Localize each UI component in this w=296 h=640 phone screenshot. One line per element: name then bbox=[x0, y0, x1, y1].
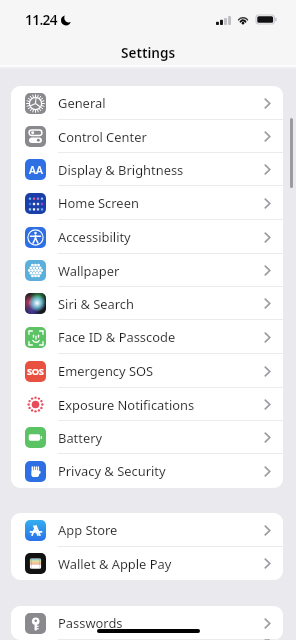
button[interactable]: Home Screen bbox=[11, 186, 283, 220]
button[interactable]: Face ID & Passcode bbox=[11, 320, 283, 354]
staticText: Accessibility bbox=[58, 228, 131, 246]
button[interactable]: App Store bbox=[11, 513, 283, 547]
staticText: Siri & Search bbox=[58, 295, 134, 313]
button[interactable]: Privacy & Security bbox=[11, 454, 283, 488]
button[interactable]: Exposure Notifications bbox=[11, 388, 283, 421]
staticText: SOS bbox=[27, 365, 44, 378]
staticText: Settings bbox=[121, 43, 176, 62]
staticText: Battery bbox=[58, 429, 103, 447]
button[interactable]: SOS bbox=[11, 354, 283, 388]
button[interactable]: Passwords bbox=[11, 606, 283, 640]
button[interactable]: General bbox=[11, 86, 283, 120]
staticText: Control Center bbox=[58, 128, 147, 146]
staticText: Display & Brightness bbox=[58, 161, 184, 179]
button[interactable]: Battery bbox=[11, 421, 283, 454]
button[interactable]: Control Center bbox=[11, 120, 283, 153]
button[interactable]: Wallet & Apple Pay bbox=[11, 547, 283, 580]
staticText: Home Screen bbox=[58, 194, 139, 212]
staticText: Privacy & Security bbox=[58, 462, 166, 480]
button[interactable]: Accessibility bbox=[11, 220, 283, 254]
staticText: Wallpaper bbox=[58, 262, 120, 280]
button[interactable]: Siri & Search bbox=[11, 287, 283, 320]
staticText: General bbox=[58, 94, 106, 112]
staticText: Exposure Notifications bbox=[58, 396, 195, 414]
staticText: 11.24 bbox=[25, 10, 57, 29]
staticText: Passwords bbox=[58, 614, 123, 632]
staticText: Emergency SOS bbox=[58, 362, 154, 380]
staticText: App Store bbox=[58, 521, 118, 539]
button[interactable]: AA bbox=[11, 153, 283, 186]
staticText: Wallet & Apple Pay bbox=[58, 555, 172, 573]
staticText: AA bbox=[29, 163, 43, 177]
staticText: Face ID & Passcode bbox=[58, 328, 176, 346]
button[interactable]: Wallpaper bbox=[11, 254, 283, 287]
